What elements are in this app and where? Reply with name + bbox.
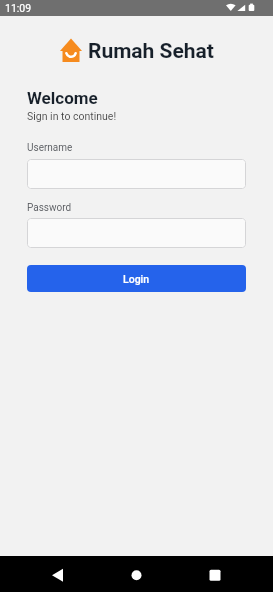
button[interactable]	[0, 556, 91, 592]
button[interactable]: Login	[27, 265, 246, 292]
staticText: Login	[123, 273, 150, 285]
staticText: Rumah Sehat	[88, 39, 214, 64]
button[interactable]	[182, 556, 273, 592]
staticText: Sign in to continue!	[27, 110, 117, 122]
staticText: Username	[27, 142, 73, 154]
staticText: 11:09	[5, 2, 32, 14]
button[interactable]	[27, 218, 246, 248]
staticText: Password	[27, 202, 72, 214]
staticText: Welcome	[27, 88, 98, 108]
button[interactable]	[27, 159, 246, 189]
button[interactable]	[91, 556, 182, 592]
